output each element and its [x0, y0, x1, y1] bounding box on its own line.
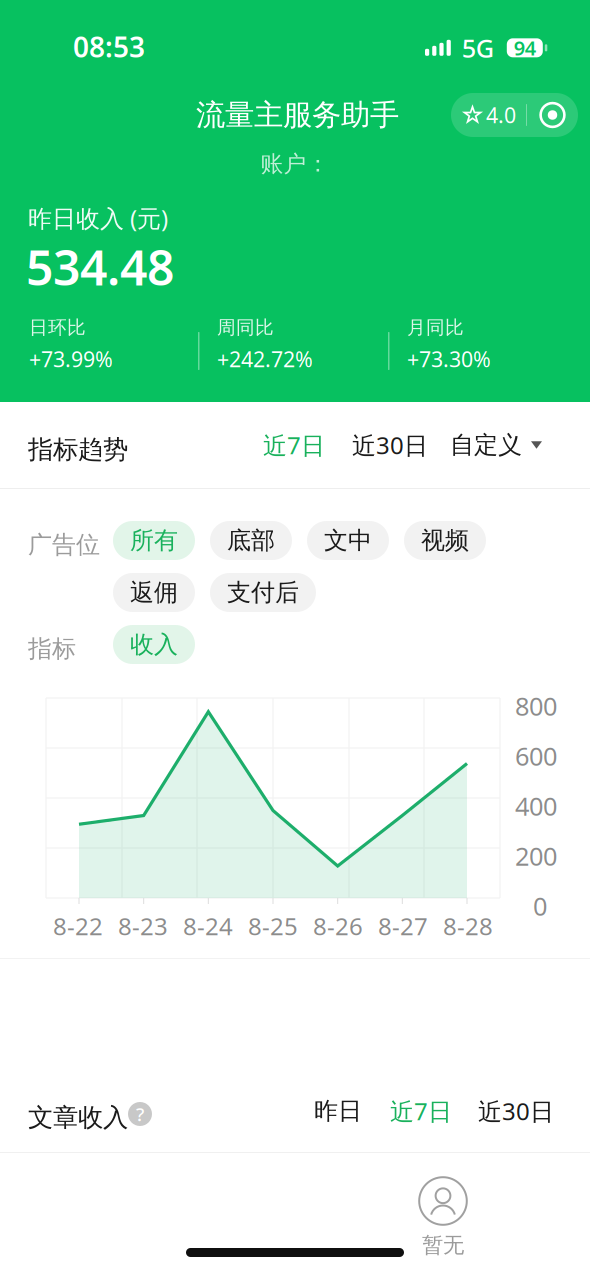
button[interactable]: 近30日 — [466, 1081, 566, 1141]
staticText: 昨日 — [314, 1096, 362, 1126]
staticText: 8-24 — [183, 910, 233, 942]
staticText: 800 — [515, 689, 557, 723]
staticText: 底部 — [227, 526, 275, 555]
staticText: 600 — [515, 739, 557, 773]
staticText: 文中 — [324, 526, 372, 555]
staticText: 自定义 — [450, 430, 522, 460]
staticText: +242.72% — [217, 345, 313, 373]
staticText: 广告位 — [28, 530, 100, 559]
staticText: ? — [136, 1102, 144, 1126]
staticText: 月同比 — [407, 316, 464, 339]
staticText: 8-25 — [248, 910, 298, 942]
staticText: 支付后 — [227, 578, 299, 607]
staticText: 近7日 — [263, 429, 325, 461]
staticText: 8-22 — [53, 910, 103, 942]
staticText: 5G — [462, 31, 494, 65]
button[interactable]: 所有 — [113, 521, 195, 560]
staticText: 视频 — [421, 526, 469, 555]
staticText: 08:53 — [73, 28, 145, 65]
staticText: 日环比 — [29, 316, 86, 339]
staticText: 返佣 — [130, 578, 178, 607]
button[interactable]: 视频 — [404, 521, 486, 560]
staticText: 8-26 — [313, 910, 363, 942]
staticText: 534.48 — [26, 235, 174, 299]
staticText: 账户： — [260, 150, 329, 178]
staticText: +73.30% — [407, 345, 491, 373]
staticText: 文章收入 — [28, 1102, 128, 1133]
staticText: 指标趋势 — [28, 434, 128, 465]
staticText: 近30日 — [478, 1095, 554, 1127]
staticText: 暂无 — [422, 1232, 464, 1258]
button[interactable]: 近7日 — [378, 1081, 464, 1141]
staticText: 8-27 — [378, 910, 428, 942]
button[interactable]: 近7日 — [251, 414, 337, 476]
staticText: 8-28 — [443, 910, 493, 942]
staticText: 指标 — [28, 634, 76, 663]
button[interactable]: 昨日 — [302, 1081, 374, 1141]
button[interactable]: 录制 — [527, 93, 578, 137]
staticText: 8-23 — [118, 910, 168, 942]
staticText: 昨日收入 (元) — [28, 202, 168, 234]
button[interactable]: 收入 — [113, 625, 195, 664]
staticText: 近7日 — [390, 1095, 452, 1127]
button[interactable]: 支付后 — [210, 573, 316, 612]
staticText: +73.99% — [29, 345, 113, 373]
staticText: 流量主服务助手 — [196, 97, 399, 133]
staticText: 94 — [514, 34, 536, 61]
button[interactable]: 底部 — [210, 521, 292, 560]
staticText: 200 — [515, 839, 557, 873]
button[interactable]: 返佣 — [113, 573, 195, 612]
button[interactable]: 近30日 — [340, 414, 440, 476]
staticText: 0 — [533, 889, 547, 923]
staticText: 所有 — [130, 526, 178, 555]
staticText: 周同比 — [217, 316, 274, 339]
button[interactable]: 4.0 — [451, 93, 526, 137]
button[interactable]: 自定义 — [438, 414, 554, 476]
staticText: 收入 — [130, 630, 178, 659]
staticText: 近30日 — [352, 429, 428, 461]
button[interactable]: 说明 — [122, 1096, 158, 1132]
button[interactable]: 文中 — [307, 521, 389, 560]
staticText: 400 — [515, 789, 557, 823]
staticText: 4.0 — [486, 101, 516, 129]
